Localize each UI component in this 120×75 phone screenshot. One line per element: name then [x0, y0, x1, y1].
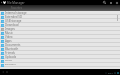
staticText: extSdCard — [5, 63, 16, 66]
button[interactable]: Back — [1, 70, 5, 74]
staticText: Bluetooth — [5, 47, 19, 51]
staticText: USB storage — [5, 19, 22, 23]
button[interactable]: Images — [0, 27, 120, 31]
staticText: sdcard — [5, 59, 12, 62]
button[interactable]: Friends — [0, 51, 120, 55]
button[interactable]: Music — [0, 31, 120, 35]
staticText: Uploads — [5, 55, 16, 59]
button[interactable]: Bluetooth — [0, 47, 120, 51]
button[interactable]: Home — [5, 70, 9, 74]
button[interactable]: App icon — [2, 0, 6, 5]
button[interactable]: Search — [102, 0, 107, 5]
button[interactable]: sdcard — [0, 59, 120, 63]
staticText: Music — [5, 31, 13, 35]
button[interactable]: Download — [0, 23, 120, 27]
staticText: Extended SD — [5, 15, 22, 19]
button[interactable]: Uploads — [0, 55, 120, 59]
button[interactable]: Video — [0, 35, 120, 39]
button[interactable]: USB storage — [0, 19, 120, 23]
button[interactable]: Internal storage — [0, 11, 120, 15]
button[interactable]: Grid view — [108, 0, 113, 5]
staticText: Apps — [5, 39, 12, 43]
staticText: Internal storage — [5, 11, 27, 15]
button[interactable]: Documents — [0, 43, 120, 47]
button[interactable]: extSdCard — [0, 63, 120, 67]
staticText: Documents — [5, 43, 21, 47]
staticText: Video — [5, 35, 13, 39]
staticText: Friends — [5, 51, 15, 55]
button[interactable]: Navigate up — [0, 0, 2, 5]
button[interactable]: More options — [114, 0, 119, 5]
staticText: Favorites — [11, 6, 23, 10]
button[interactable]: Apps — [0, 39, 120, 43]
staticText: Images — [5, 27, 15, 31]
staticText: Download — [5, 23, 19, 27]
button[interactable]: Extended SD — [0, 15, 120, 19]
staticText: 9:41 — [108, 71, 113, 74]
staticText: File Manager — [7, 1, 25, 5]
